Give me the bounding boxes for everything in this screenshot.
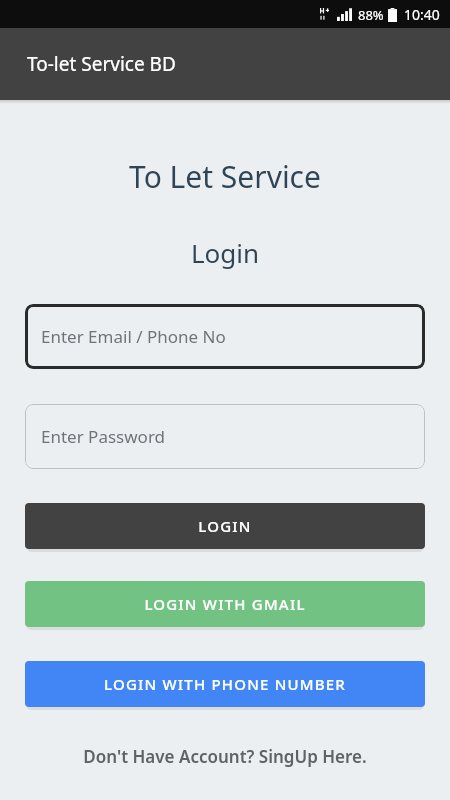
staticText: 10:40 — [404, 5, 440, 24]
button[interactable]: Enter Email / Phone No — [25, 304, 425, 369]
button[interactable]: Enter Password — [25, 404, 425, 469]
staticText: To-let Service BD — [27, 51, 176, 77]
staticText: To Let Service — [0, 156, 450, 197]
staticText: LOGIN WITH GMAIL — [144, 594, 306, 614]
button[interactable]: LOGIN WITH GMAIL — [25, 581, 425, 627]
button[interactable]: Don't Have Account? SingUp Here. — [0, 741, 450, 772]
staticText: Enter Email / Phone No — [41, 325, 226, 348]
staticText: 88% — [358, 6, 384, 24]
staticText: Login — [0, 235, 450, 270]
button[interactable]: LOGIN — [25, 503, 425, 549]
staticText: Don't Have Account? SingUp Here. — [83, 745, 367, 768]
staticText: LOGIN WITH PHONE NUMBER — [104, 674, 346, 694]
staticText: Enter Password — [41, 425, 166, 448]
button[interactable]: LOGIN WITH PHONE NUMBER — [25, 661, 425, 707]
staticText: LOGIN — [198, 516, 252, 536]
